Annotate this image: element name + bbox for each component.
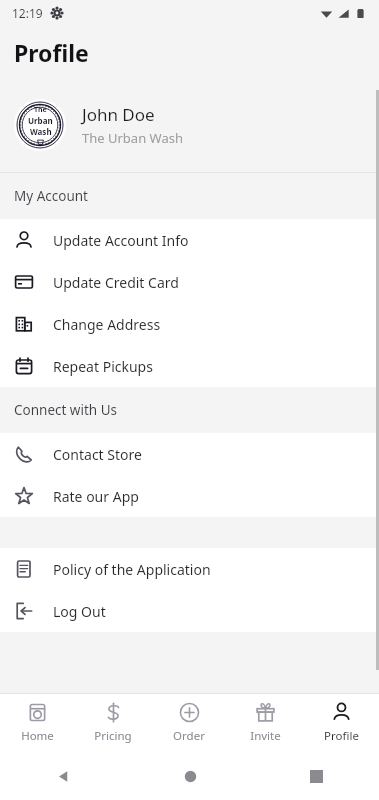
staticText: Policy of the Application bbox=[53, 560, 211, 579]
button[interactable]: Change Address bbox=[0, 303, 379, 345]
button[interactable]: Update Account Info bbox=[0, 219, 379, 261]
staticText: Update Credit Card bbox=[53, 273, 179, 292]
staticText: Repeat Pickups bbox=[53, 357, 153, 376]
staticText: Order bbox=[173, 728, 205, 744]
button[interactable]: Contact Store bbox=[0, 433, 379, 475]
staticText: Log Out bbox=[53, 602, 106, 621]
staticText: Profile bbox=[14, 37, 89, 68]
button[interactable]: Pricing bbox=[75, 694, 151, 752]
staticText: Profile bbox=[324, 728, 359, 744]
other: Home bbox=[183, 769, 198, 784]
staticText: My Account bbox=[14, 187, 88, 205]
staticText: The Urban Wash bbox=[82, 129, 183, 147]
button[interactable]: Profile bbox=[303, 694, 379, 752]
button[interactable]: The bbox=[0, 78, 379, 172]
staticText: The bbox=[34, 105, 47, 115]
staticText: Change Address bbox=[53, 315, 161, 334]
staticText: Update Account Info bbox=[53, 231, 189, 250]
staticText: Rate our App bbox=[53, 487, 139, 506]
staticText: John Doe bbox=[82, 103, 155, 126]
button[interactable]: Invite bbox=[227, 694, 303, 752]
button[interactable]: Update Credit Card bbox=[0, 261, 379, 303]
button[interactable]: Rate our App bbox=[0, 475, 379, 517]
staticText: Invite bbox=[250, 728, 281, 744]
button[interactable]: Repeat Pickups bbox=[0, 345, 379, 387]
staticText: Contact Store bbox=[53, 445, 142, 464]
staticText: Home bbox=[21, 728, 54, 744]
staticText: Urban bbox=[28, 115, 53, 126]
staticText: Wash bbox=[30, 126, 52, 137]
button[interactable]: Log Out bbox=[0, 590, 379, 632]
other: Back bbox=[56, 769, 71, 784]
button[interactable]: Policy of the Application bbox=[0, 548, 379, 590]
staticText: Connect with Us bbox=[14, 401, 118, 419]
button[interactable]: Order bbox=[151, 694, 227, 752]
button[interactable]: Home bbox=[0, 694, 75, 752]
staticText: 12:19 bbox=[12, 5, 43, 21]
staticText: Pricing bbox=[94, 728, 132, 744]
